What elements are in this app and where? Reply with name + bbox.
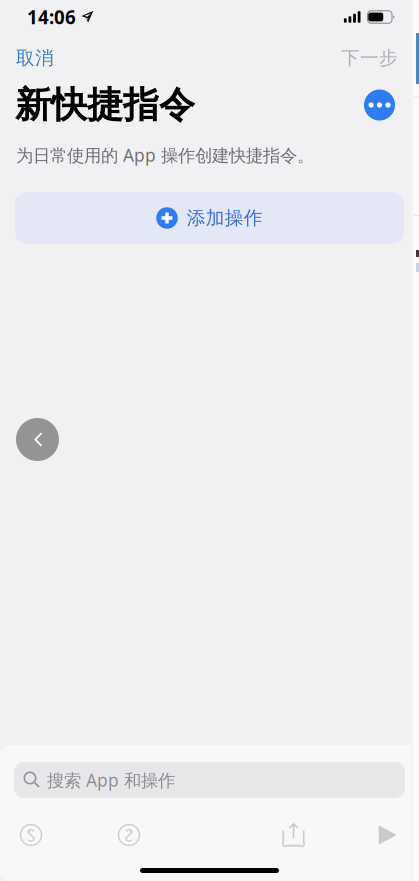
button[interactable]: 更多 <box>364 89 419 120</box>
staticText: 添加操作 <box>187 206 263 229</box>
staticText: 取消 <box>16 46 54 69</box>
button[interactable]: 添加操作 <box>0 192 419 244</box>
button[interactable]: 下一步 <box>329 40 419 75</box>
button[interactable]: 取消 <box>0 40 66 75</box>
staticText: 新快捷指令 <box>15 83 195 127</box>
staticText: 搜索 App 和操作 <box>47 768 175 791</box>
button[interactable]: 撤销 <box>20 824 42 846</box>
staticText: 为日常使用的 App 操作创建快捷指令。 <box>16 143 314 166</box>
button[interactable]: 共享 <box>282 822 305 847</box>
button[interactable]: 运行 <box>378 825 398 845</box>
staticText: 14:06 <box>27 5 76 29</box>
button[interactable]: 返回 <box>0 418 59 461</box>
button[interactable]: 重做 <box>118 824 140 846</box>
staticText: 下一步 <box>341 46 398 69</box>
